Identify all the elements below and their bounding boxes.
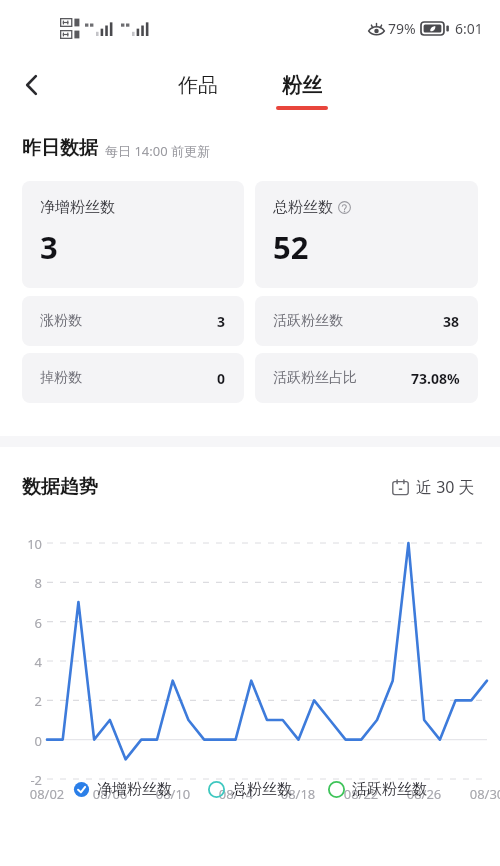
staticText: 0 — [217, 369, 226, 388]
staticText: 昨日数据 — [22, 136, 98, 160]
staticText: 总粉丝数 — [273, 198, 333, 217]
button[interactable]: 活跃粉丝数 — [325, 777, 430, 802]
staticText: 79% — [388, 19, 416, 38]
staticText: 08/14 — [210, 785, 262, 803]
button[interactable]: 作品 — [168, 61, 228, 110]
staticText: 08/06 — [84, 785, 136, 803]
staticText: 作品 — [178, 73, 218, 98]
staticText: 总粉丝数 — [232, 780, 292, 799]
staticText: 73.08% — [411, 369, 460, 388]
staticText: 活跃粉丝数 — [273, 312, 343, 330]
staticText: 涨粉数 — [40, 312, 82, 330]
staticText: 08/26 — [398, 785, 450, 803]
button[interactable]: 活跃粉丝占比 — [255, 353, 478, 403]
staticText: 0 — [14, 732, 42, 750]
staticText: 粉丝 — [282, 73, 322, 98]
button[interactable]: 总粉丝数 — [255, 181, 478, 288]
button[interactable]: 近 30 天 — [389, 473, 478, 501]
staticText: 活跃粉丝占比 — [273, 369, 357, 387]
staticText: 2 — [14, 692, 42, 710]
staticText: 4 — [14, 653, 42, 671]
button[interactable]: 粉丝 — [272, 61, 332, 110]
staticText: 10 — [14, 535, 42, 553]
button[interactable]: 活跃粉丝数 — [255, 296, 478, 346]
staticText: 6:01 — [455, 19, 483, 38]
button[interactable]: 总粉丝数 — [205, 777, 295, 802]
staticText: 每日 14:00 前更新 — [105, 142, 210, 160]
staticText: 3 — [217, 312, 226, 331]
staticText: 52 — [273, 226, 309, 268]
button[interactable]: 净增粉丝数 — [22, 181, 244, 288]
staticText: 08/02 — [21, 785, 73, 803]
staticText: 近 30 天 — [416, 476, 475, 498]
staticText: 净增粉丝数 — [97, 780, 172, 799]
staticText: -2 — [14, 771, 42, 789]
staticText: 08/18 — [272, 785, 324, 803]
staticText: 38 — [443, 312, 460, 331]
button[interactable]: 涨粉数 — [22, 296, 244, 346]
staticText: 数据趋势 — [22, 475, 98, 499]
staticText: 掉粉数 — [40, 369, 82, 387]
staticText: 8 — [14, 574, 42, 592]
staticText: 08/30 — [461, 785, 500, 803]
staticText: 3 — [40, 226, 58, 268]
button[interactable]: 掉粉数 — [22, 353, 244, 403]
staticText: 净增粉丝数 — [40, 198, 115, 217]
staticText: 活跃粉丝数 — [352, 780, 427, 799]
button[interactable]: Back — [8, 61, 56, 109]
button[interactable]: 净增粉丝数 — [70, 777, 175, 802]
staticText: 6 — [14, 614, 42, 632]
staticText: 08/22 — [335, 785, 387, 803]
staticText: 08/10 — [147, 785, 199, 803]
